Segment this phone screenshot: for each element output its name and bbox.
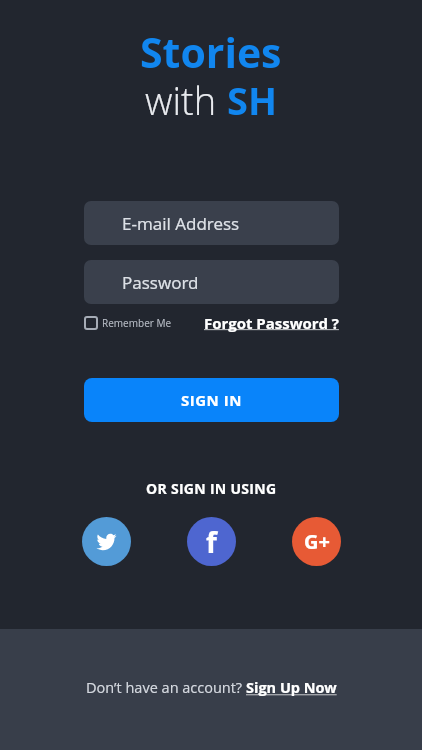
button[interactable]: Don’t have an account? [86,680,337,700]
staticText: SIGN IN [181,390,242,410]
staticText: Sign Up Now [246,678,337,698]
staticText: f [206,523,217,561]
staticText: Password [122,271,199,294]
button[interactable]: E-mail Address [84,201,339,245]
staticText: with [145,74,227,126]
staticText: Remember Me [102,316,172,330]
button[interactable] [82,517,131,566]
staticText: OR SIGN IN USING [146,479,277,498]
button[interactable]: Password [84,260,339,304]
staticText: Don’t have an account? [86,678,246,698]
button[interactable]: f [187,517,236,566]
staticText: E-mail Address [122,212,240,235]
staticText: Stories [140,24,282,80]
staticText: SH [227,74,278,126]
button[interactable]: Remember Me [84,316,172,330]
button[interactable]: SIGN IN [84,378,339,422]
button[interactable]: Forgot Password ? [204,313,339,333]
button[interactable]: G+ [292,517,341,566]
staticText: G+ [304,528,330,555]
